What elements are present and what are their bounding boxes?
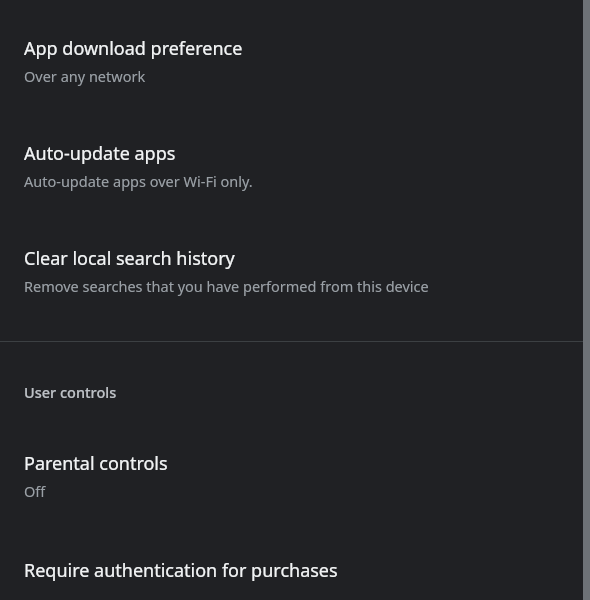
staticText: Over any network [24, 66, 146, 86]
staticText: Off [24, 481, 46, 501]
button[interactable]: Parental controls [0, 451, 590, 501]
button[interactable]: App download preference [0, 36, 590, 86]
button[interactable]: Auto-update apps [0, 141, 590, 191]
staticText: Parental controls [24, 451, 168, 476]
button[interactable]: Clear local search history [0, 246, 590, 296]
staticText: Auto-update apps [24, 141, 176, 166]
staticText: Remove searches that you have performed … [24, 276, 429, 296]
button[interactable]: Require authentication for purchases [0, 558, 590, 583]
staticText: Clear local search history [24, 246, 235, 271]
staticText: User controls [24, 382, 117, 402]
staticText: App download preference [24, 36, 243, 61]
staticText: Auto-update apps over Wi-Fi only. [24, 171, 253, 191]
staticText: Require authentication for purchases [24, 558, 338, 583]
